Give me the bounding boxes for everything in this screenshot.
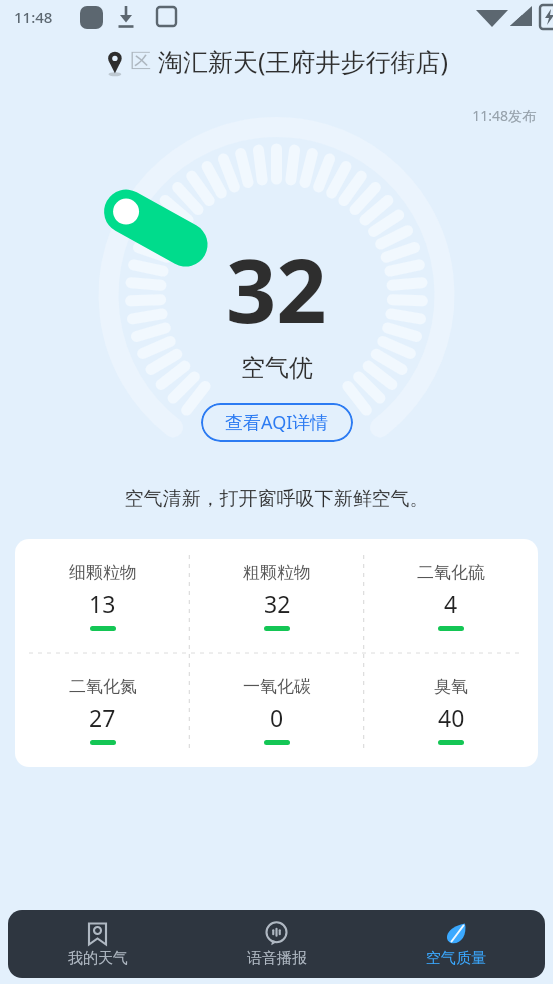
staticText: 二氧化氮 xyxy=(69,676,137,697)
staticText: 27 xyxy=(89,702,116,733)
staticText: 二氧化硫 xyxy=(417,562,485,583)
button[interactable]: 我的天气 xyxy=(8,910,187,978)
button[interactable]: 细颗粒物 xyxy=(15,539,190,653)
staticText: 40 xyxy=(438,702,465,733)
button[interactable]: 二氧化氮 xyxy=(15,653,190,767)
staticText: 语音播报 xyxy=(247,949,307,968)
staticText: 11:48发布 xyxy=(0,106,536,125)
button[interactable]: 空气质量 xyxy=(366,910,545,978)
staticText: 32 xyxy=(226,229,327,349)
button[interactable]: 一氧化碳 xyxy=(190,653,364,767)
staticText: 13 xyxy=(89,588,116,619)
staticText: 空气优 xyxy=(241,353,313,383)
button[interactable]: 二氧化硫 xyxy=(364,539,538,653)
staticText: 我的天气 xyxy=(68,949,128,968)
button[interactable]: 查看AQI详情 xyxy=(201,403,353,442)
staticText: 细颗粒物 xyxy=(69,562,137,583)
button[interactable]: 粗颗粒物 xyxy=(190,539,364,653)
staticText: 臭氧 xyxy=(434,676,468,697)
staticText: 32 xyxy=(264,588,291,619)
staticText: 粗颗粒物 xyxy=(243,562,311,583)
staticText: 一氧化碳 xyxy=(243,676,311,697)
button[interactable]: 语音播报 xyxy=(187,910,366,978)
staticText: 4 xyxy=(444,588,458,619)
button[interactable]: 臭氧 xyxy=(364,653,538,767)
staticText: 0 xyxy=(270,702,284,733)
staticText: 淘汇新天(王府井步行街店) xyxy=(158,44,449,78)
staticText: 区 xyxy=(130,48,151,74)
staticText: 空气质量 xyxy=(426,949,486,968)
staticText: 空气清新，打开窗呼吸下新鲜空气。 xyxy=(0,487,553,511)
staticText: 查看AQI详情 xyxy=(225,410,329,435)
staticText: 11:48 xyxy=(14,7,53,27)
